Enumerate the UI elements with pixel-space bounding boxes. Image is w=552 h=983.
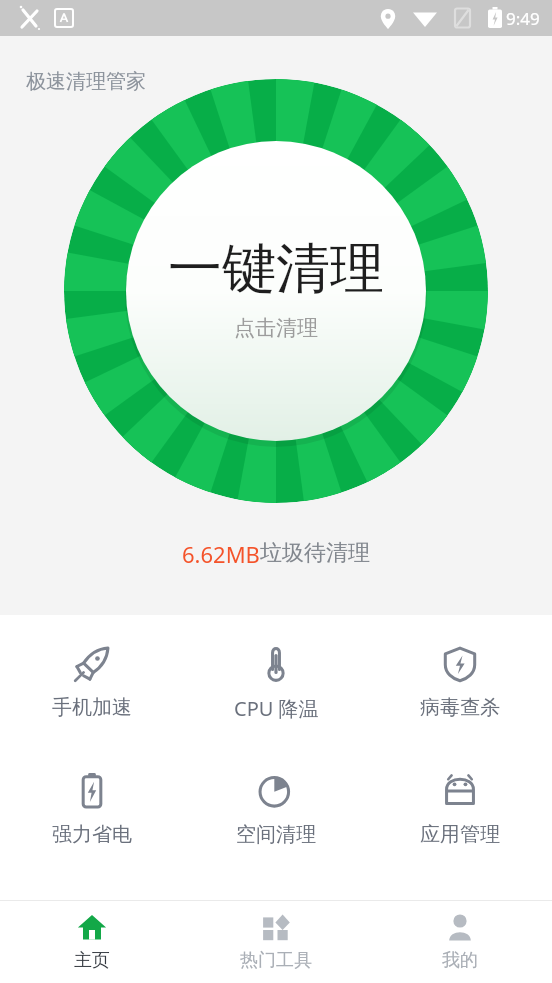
staticText: 病毒查杀 xyxy=(420,695,500,720)
staticText: 我的 xyxy=(442,949,478,972)
button[interactable]: 手机加速 xyxy=(0,637,184,726)
button[interactable]: 空间清理 xyxy=(184,764,368,853)
staticText: 6.62MB xyxy=(182,539,260,569)
button[interactable]: 我的 xyxy=(368,901,552,983)
staticText: 空间清理 xyxy=(236,822,316,847)
staticText: 点击清理 xyxy=(234,315,318,341)
staticText: CPU 降温 xyxy=(234,695,319,722)
staticText: 垃圾待清理 xyxy=(260,539,370,567)
staticText: 应用管理 xyxy=(420,822,500,847)
staticText: 9:49 xyxy=(506,7,540,30)
button[interactable]: 强力省电 xyxy=(0,764,184,853)
button[interactable]: 病毒查杀 xyxy=(368,637,552,726)
button[interactable]: 热门工具 xyxy=(184,901,368,983)
button[interactable]: 主页 xyxy=(0,901,184,983)
staticText: 一键清理 xyxy=(168,235,384,303)
staticText: 极速清理管家 xyxy=(26,69,146,94)
button[interactable]: 应用管理 xyxy=(368,764,552,853)
staticText: 热门工具 xyxy=(240,949,312,972)
button[interactable]: 一键清理 xyxy=(64,79,488,503)
staticText: 手机加速 xyxy=(52,695,132,720)
staticText: 主页 xyxy=(74,949,110,972)
button[interactable]: CPU 降温 xyxy=(184,637,368,728)
staticText: 强力省电 xyxy=(52,822,132,847)
